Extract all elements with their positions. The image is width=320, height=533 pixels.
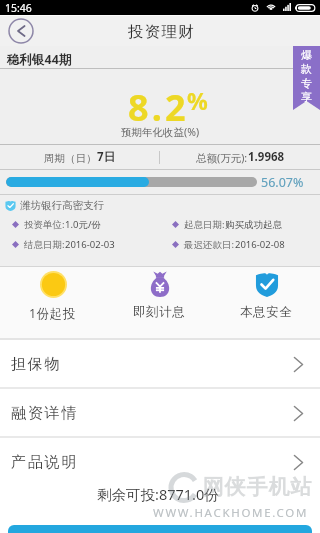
staticText: 起息日期: bbox=[184, 218, 225, 231]
staticText: 最迟还款日: bbox=[184, 238, 235, 251]
staticText: 即刻计息 bbox=[133, 304, 186, 320]
button[interactable]: 担保物 bbox=[0, 340, 320, 389]
button[interactable] bbox=[8, 525, 312, 533]
staticText: 周期（日） bbox=[44, 152, 97, 165]
staticText: 15:46 bbox=[5, 1, 32, 15]
staticText: 本息安全 bbox=[240, 304, 293, 320]
staticText: 1份起投 bbox=[29, 305, 77, 322]
staticText: 潍坊银行高密支行 bbox=[20, 199, 104, 212]
staticText: 2016-02-08 bbox=[235, 238, 285, 251]
button[interactable]: 产品说明 bbox=[0, 438, 320, 487]
staticText: 1.0元/份 bbox=[65, 218, 101, 231]
staticText: 爆 bbox=[301, 48, 312, 62]
staticText: 专 bbox=[301, 76, 312, 90]
staticText: 56.07% bbox=[261, 174, 304, 191]
staticText: 结息日期: bbox=[24, 238, 65, 251]
staticText: 总额(万元): bbox=[196, 151, 248, 165]
staticText: % bbox=[187, 85, 208, 116]
staticText: 8.2 bbox=[128, 83, 189, 132]
staticText: 2016-02-03 bbox=[65, 238, 115, 251]
staticText: 预期年化收益(%) bbox=[121, 125, 200, 139]
staticText: 1.9968 bbox=[248, 149, 285, 165]
staticText: 投资理财 bbox=[128, 22, 195, 42]
staticText: 享 bbox=[301, 90, 312, 104]
staticText: 款 bbox=[301, 62, 312, 76]
staticText: 投资单位: bbox=[24, 218, 65, 231]
staticText: 7日 bbox=[97, 149, 116, 165]
staticText: 购买成功起息 bbox=[225, 219, 282, 231]
button[interactable]: 1份起投 bbox=[0, 267, 106, 338]
button[interactable]: 即刻计息 bbox=[106, 267, 213, 338]
staticText: 剩余可投:8771.0份 bbox=[97, 484, 219, 504]
staticText: WWW.HACKHOME.COM bbox=[153, 505, 309, 521]
button[interactable]: 本息安全 bbox=[213, 267, 320, 338]
button[interactable]: Back bbox=[8, 18, 34, 44]
staticText: 融资详情 bbox=[11, 404, 79, 423]
staticText: 担保物 bbox=[11, 355, 62, 374]
staticText: 产品说明 bbox=[11, 453, 79, 472]
button[interactable]: 融资详情 bbox=[0, 389, 320, 438]
staticText: 稳利银44期 bbox=[7, 51, 72, 68]
staticText: 网侠手机站 bbox=[202, 474, 312, 500]
